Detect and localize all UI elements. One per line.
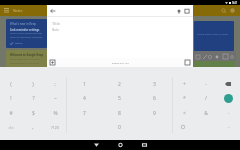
button[interactable]: 9 (143, 106, 165, 120)
staticText: 3 (153, 81, 156, 88)
staticText: + (183, 81, 186, 88)
staticText: ~ (54, 95, 57, 102)
staticText: ?123 (51, 125, 59, 130)
staticText: 8 (118, 110, 121, 117)
button[interactable]: ? (22, 91, 44, 105)
staticText: % (53, 110, 58, 117)
button[interactable]: Search (221, 8, 226, 13)
staticText: Note (52, 28, 59, 32)
staticText: 4 (83, 95, 86, 102)
staticText: 0 (118, 124, 121, 131)
button[interactable]: 3 (143, 77, 165, 91)
staticText: ) (32, 81, 34, 88)
staticText: – (227, 110, 230, 116)
staticText: ( (10, 81, 12, 88)
button[interactable]: =\< (0, 120, 22, 134)
button[interactable]: + (173, 77, 195, 91)
staticText: Title (52, 21, 60, 26)
staticText: – (227, 124, 230, 130)
button[interactable]: % (44, 106, 66, 120)
staticText: Link reminder settings (10, 28, 40, 32)
button[interactable]: Backspace (217, 77, 239, 91)
staticText: What's new in Keep (10, 22, 37, 26)
staticText: 9 (153, 110, 156, 117)
button[interactable]: More options (185, 60, 190, 65)
staticText: GOT IT (15, 41, 23, 44)
button[interactable]: Back (50, 8, 56, 14)
staticText: / (205, 95, 207, 102)
button[interactable]: Lorem ipsum dolor sit amet (194, 21, 234, 51)
button[interactable]: * (173, 91, 195, 105)
staticText: 7 (83, 110, 86, 117)
button[interactable]: 7 (73, 106, 95, 120)
button[interactable]: # (0, 106, 22, 120)
staticText: Notes (13, 8, 23, 13)
staticText: =\< (8, 125, 14, 130)
staticText: 6 (153, 95, 156, 102)
button[interactable]: 6 (143, 91, 165, 105)
button[interactable]: $ (22, 106, 44, 120)
staticText: 2 (118, 81, 121, 88)
button[interactable]: Pin note (176, 8, 182, 14)
button[interactable]: / (195, 91, 217, 105)
button[interactable]: 0 (108, 120, 130, 134)
staticText: < (183, 110, 186, 117)
button[interactable]: Home (118, 143, 123, 147)
staticText: Welcome to Google Keep (10, 53, 44, 57)
button[interactable]: Enter (217, 91, 239, 105)
staticText: ? (32, 95, 35, 102)
button[interactable]: Emoji (172, 120, 194, 134)
staticText: , (32, 124, 34, 131)
button[interactable]: Back (94, 143, 99, 147)
staticText: 5 (118, 95, 121, 102)
button[interactable]: ! (0, 91, 22, 105)
staticText: # (9, 110, 13, 117)
button[interactable]: ?123 (44, 120, 66, 134)
button[interactable]: Reminder (184, 8, 190, 14)
staticText: Lorem ipsum dolor sit amet (197, 32, 229, 35)
button[interactable]: 5 (108, 91, 130, 105)
staticText: & (204, 110, 208, 117)
staticText: 1 (83, 81, 86, 88)
button[interactable]: ) (22, 77, 44, 91)
staticText: 9:41 (232, 1, 238, 5)
staticText: Edited 9:41 AM (112, 61, 129, 64)
button[interactable]: Open navigation drawer (4, 8, 9, 12)
staticText: - (205, 81, 207, 88)
staticText: ! (10, 95, 12, 102)
button[interactable]: < (173, 106, 195, 120)
button[interactable]: & (195, 106, 217, 120)
button[interactable]: What's new in Keep (6, 19, 47, 48)
button[interactable]: 2 (108, 77, 130, 91)
staticText: Google Keep lets you quickly capture wha… (10, 58, 40, 64)
button[interactable]: 1 (73, 77, 95, 91)
button[interactable]: 8 (108, 106, 130, 120)
staticText: * (183, 95, 186, 102)
button[interactable]: Recent apps (142, 143, 147, 147)
staticText: $ (32, 110, 35, 117)
staticText: : (54, 81, 56, 88)
button[interactable]: ( (0, 77, 22, 91)
button[interactable]: Account (230, 8, 235, 13)
button[interactable]: Welcome to Google Keep (6, 50, 47, 67)
button[interactable]: 4 (73, 91, 95, 105)
button[interactable]: Add (50, 60, 55, 65)
staticText: Privacy Fluids settings will now mean fo… (10, 32, 42, 38)
